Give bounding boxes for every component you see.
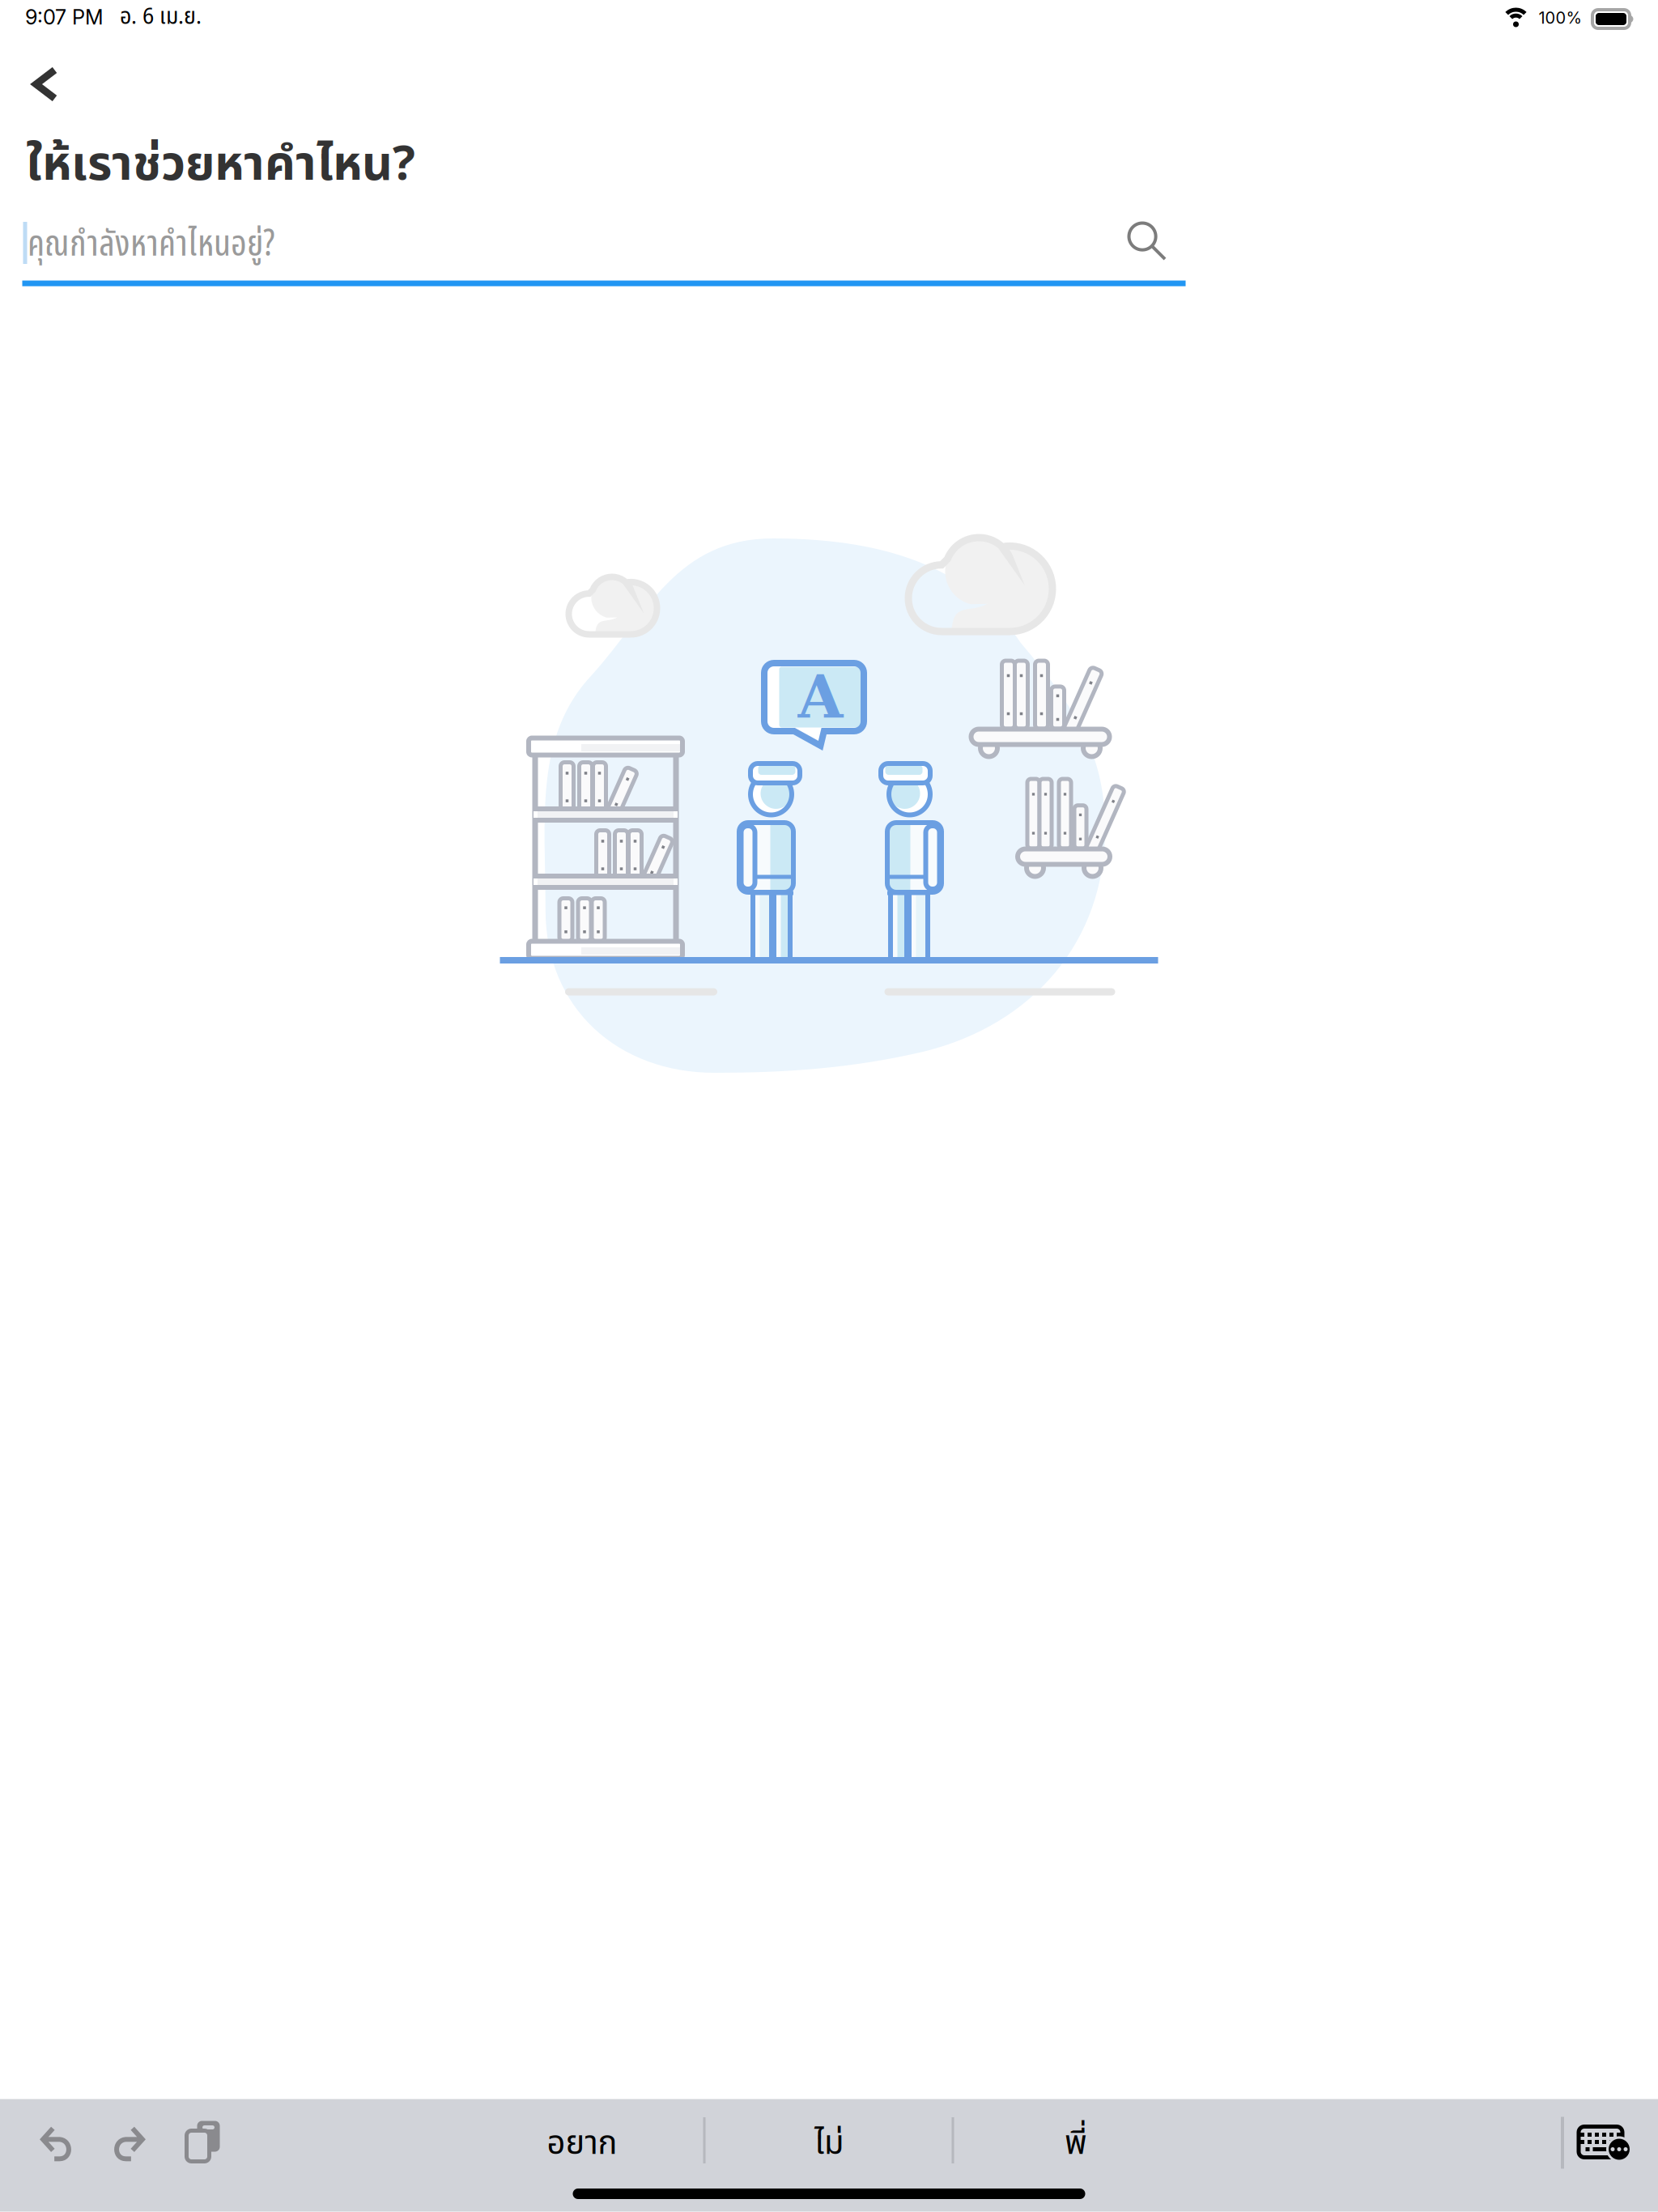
button[interactable]: อยาก [469,2103,695,2184]
button[interactable]: Back [13,47,77,121]
staticText: อ. 6 เม.ย. [120,0,202,34]
button[interactable]: ไม่ [716,2103,942,2184]
button[interactable]: Undo [21,2106,92,2181]
staticText: A [798,663,843,731]
staticText: 100% [1539,8,1581,28]
staticText: ไม่ [814,2118,844,2169]
staticText: ให้เราช่วยหาคำไหน? [26,129,415,201]
staticText: พี่ [1065,2118,1087,2169]
staticText: 9:07 PM [25,5,104,29]
staticText: อยาก [547,2118,617,2169]
button[interactable]: Paste [167,2101,239,2181]
staticText: คุณกำลังหาคำไหนอยู่? [28,217,274,272]
button[interactable]: Redo [93,2106,164,2181]
button[interactable]: พี่ [963,2103,1189,2184]
button[interactable]: Dismiss keyboard [1564,2112,1645,2174]
